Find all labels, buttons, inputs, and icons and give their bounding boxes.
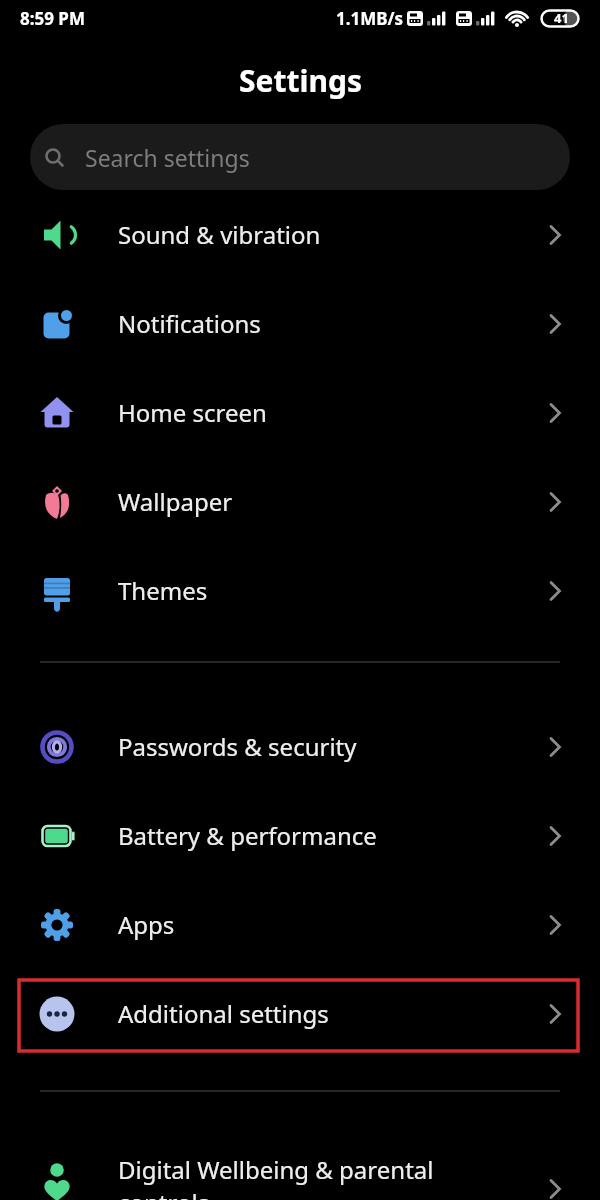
- staticText: controls: [118, 1186, 210, 1200]
- staticText: Apps: [118, 908, 175, 941]
- staticText: Themes: [118, 574, 208, 607]
- staticText: Battery & performance: [118, 819, 377, 852]
- staticText: Home screen: [118, 396, 267, 429]
- button[interactable]: Home screen: [0, 368, 600, 457]
- button[interactable]: Digital Wellbeing & parental: [0, 1153, 600, 1200]
- button[interactable]: Passwords & security: [0, 702, 600, 791]
- staticText: Wallpaper: [118, 485, 233, 518]
- button[interactable]: Search settings: [30, 124, 570, 190]
- staticText: Additional settings: [118, 997, 329, 1030]
- staticText: 41: [554, 9, 569, 27]
- button[interactable]: Sound & vibration: [0, 190, 600, 279]
- button[interactable]: Apps: [0, 880, 600, 969]
- staticText: Settings: [239, 60, 362, 101]
- button[interactable]: Notifications: [0, 279, 600, 368]
- button[interactable]: Themes: [0, 546, 600, 635]
- button[interactable]: Additional settings: [0, 969, 600, 1058]
- staticText: Notifications: [118, 307, 261, 340]
- staticText: Passwords & security: [118, 730, 357, 763]
- staticText: Search settings: [85, 142, 250, 173]
- staticText: Sound & vibration: [118, 218, 321, 251]
- button[interactable]: Battery & performance: [0, 791, 600, 880]
- staticText: 1.1MB/s: [336, 7, 404, 30]
- button[interactable]: Wallpaper: [0, 457, 600, 546]
- staticText: Digital Wellbeing & parental: [118, 1153, 434, 1186]
- staticText: 8:59 PM: [20, 7, 85, 30]
